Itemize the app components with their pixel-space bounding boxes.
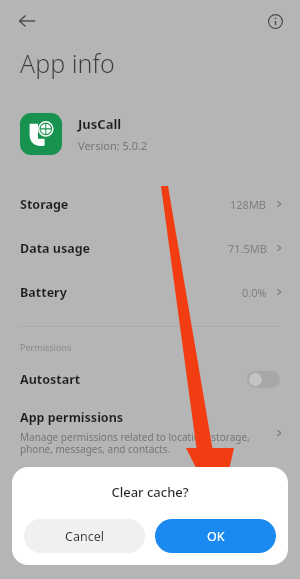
button[interactable]: Storage [0,182,300,226]
button[interactable]: Cancel [24,519,145,553]
staticText: 128MB [230,197,267,212]
button[interactable]: OK [155,519,276,553]
staticText: OK [207,528,225,545]
button[interactable]: App permissions [0,409,300,456]
staticText: Data usage [20,240,91,257]
staticText: Permissions [20,341,72,353]
staticText: Autostart [20,371,81,388]
staticText: Version: 5.0.2 [78,138,148,153]
button[interactable]: Autostart [0,365,300,393]
staticText: Storage [20,196,69,213]
staticText: Battery [20,284,67,301]
staticText: App info [20,46,115,80]
button[interactable]: Battery [0,270,300,314]
staticText: Cancel [65,528,104,545]
staticText: 71.5MB [228,241,267,256]
button[interactable]: Data usage [0,226,300,270]
button[interactable]: Back [10,4,44,38]
staticText: 0.0% [242,285,267,300]
staticText: JusCall [78,115,122,133]
staticText: Clear cache? [111,483,189,501]
staticText: Manage permissions related to location, … [20,430,250,456]
staticText: App permissions [20,409,124,426]
button[interactable]: About app [258,4,292,38]
